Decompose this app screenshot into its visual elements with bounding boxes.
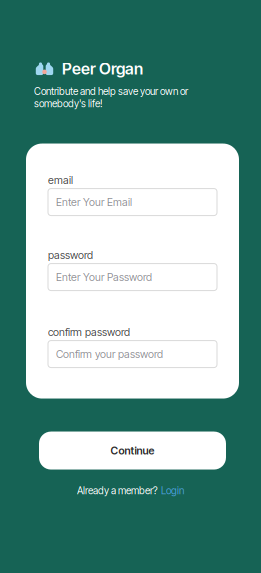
staticText: Contribute and help save your own or som… <box>34 85 188 110</box>
staticText: password <box>48 249 93 262</box>
staticText: Enter Your Password <box>56 271 152 283</box>
staticText: Confirm your password <box>56 348 163 360</box>
button[interactable]: password <box>48 264 217 291</box>
button[interactable]: Continue <box>39 432 226 470</box>
button[interactable]: confirm password <box>48 341 217 368</box>
button[interactable]: email <box>48 189 217 216</box>
staticText: Login <box>161 485 184 497</box>
button[interactable]: Login <box>161 485 184 497</box>
staticText: Peer Organ <box>62 59 143 78</box>
staticText: Already a member? <box>77 485 158 497</box>
staticText: confirm password <box>48 326 130 339</box>
staticText: Enter Your Email <box>56 196 132 208</box>
staticText: Continue <box>110 444 154 457</box>
staticText: email <box>48 174 73 187</box>
